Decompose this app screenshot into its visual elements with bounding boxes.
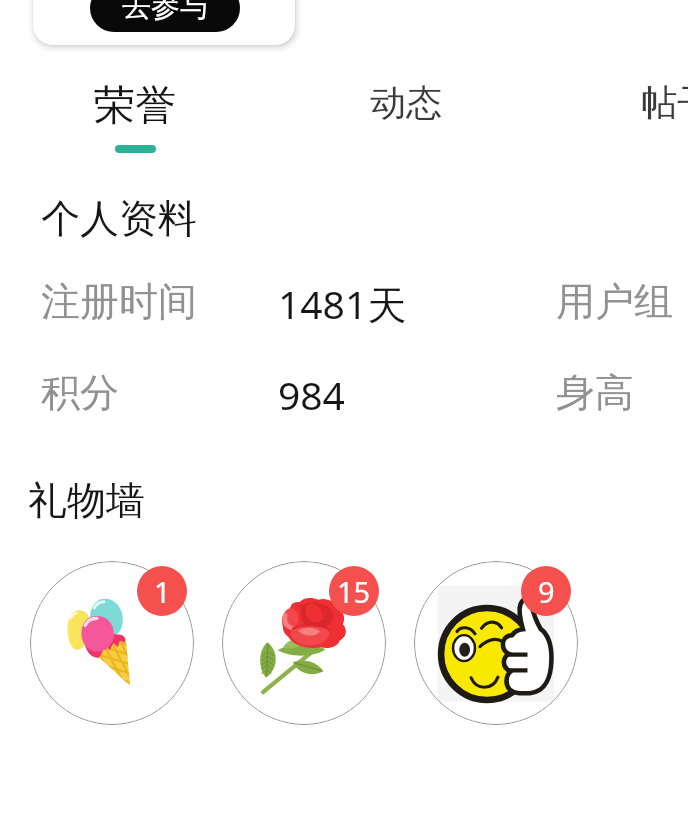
button[interactable]: 荣誉 (50, 80, 220, 160)
staticText: 注册时间 (41, 277, 197, 326)
staticText: 用户组 (556, 277, 673, 326)
staticText: 荣誉 (94, 80, 176, 132)
button[interactable]: 去参与 (90, 0, 240, 32)
staticText: 礼物墙 (28, 476, 145, 525)
button[interactable]: 玫瑰礼物 (222, 561, 386, 725)
staticText: 984 (278, 368, 345, 421)
staticText: 1 (154, 572, 171, 611)
staticText: 动态 (370, 80, 442, 125)
button[interactable]: 帖子 (592, 80, 688, 160)
staticText: 1481天 (278, 277, 407, 330)
staticText: 帖子 (641, 80, 688, 125)
staticText: 去参与 (122, 0, 209, 25)
staticText: 身高 (556, 368, 634, 417)
staticText: 积分 (41, 368, 119, 417)
staticText: 个人资料 (41, 194, 197, 243)
button[interactable]: 动态 (321, 80, 491, 160)
staticText: 15 (337, 572, 371, 611)
button[interactable]: 点赞礼物 (414, 561, 578, 725)
button[interactable]: 冰淇淋礼物 (30, 561, 194, 725)
staticText: 9 (538, 572, 555, 611)
